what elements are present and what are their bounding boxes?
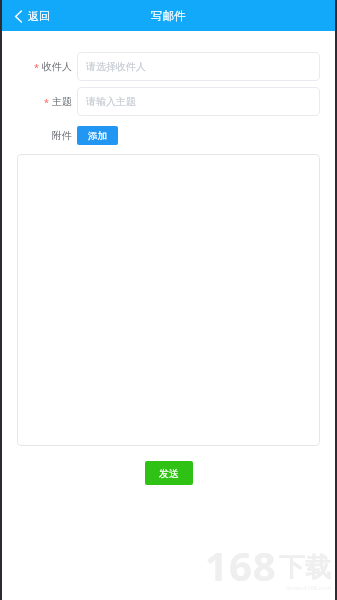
button[interactable]: 发送 [145,461,193,485]
button[interactable]: 请输入主题 [77,87,320,116]
staticText: 下载 [279,551,331,584]
staticText: 请选择收件人 [86,60,146,73]
staticText: * [34,61,39,73]
staticText: 添加 [88,130,107,142]
button[interactable]: 请选择收件人 [77,52,320,81]
staticText: down.it168.com [286,584,331,592]
staticText: 附件 [52,129,72,142]
button[interactable]: 添加 [77,126,118,145]
staticText: 168 [205,538,277,592]
staticText: 主题 [52,95,72,108]
staticText: 发送 [159,467,179,480]
button[interactable] [17,154,320,446]
staticText: 请输入主题 [86,95,136,108]
staticText: * [44,96,49,108]
staticText: 写邮件 [151,9,186,23]
button[interactable]: 返回 [10,5,54,27]
staticText: 收件人 [42,60,72,73]
staticText: 返回 [28,9,50,23]
